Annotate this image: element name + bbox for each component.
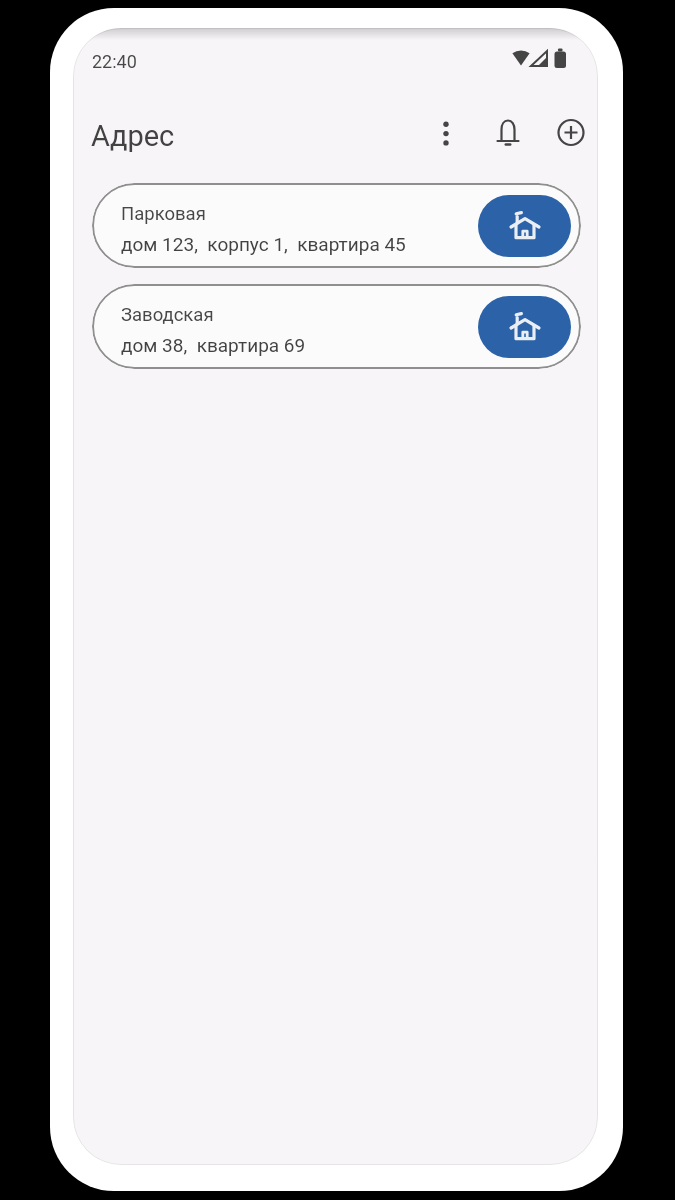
button[interactable] — [478, 195, 571, 257]
staticText: дом 123, корпус 1, квартира 45 — [121, 233, 406, 255]
button[interactable]: Заводская — [92, 284, 581, 369]
staticText: Парковая — [121, 203, 206, 225]
button[interactable] — [478, 296, 571, 358]
button[interactable] — [492, 116, 524, 148]
button[interactable] — [556, 117, 586, 147]
button[interactable]: Парковая — [92, 183, 581, 268]
staticText: Заводская — [121, 304, 214, 326]
staticText: дом 38, квартира 69 — [121, 334, 306, 356]
staticText: Адрес — [91, 119, 175, 153]
button[interactable] — [433, 118, 459, 150]
staticText: 22:40 — [92, 51, 137, 72]
